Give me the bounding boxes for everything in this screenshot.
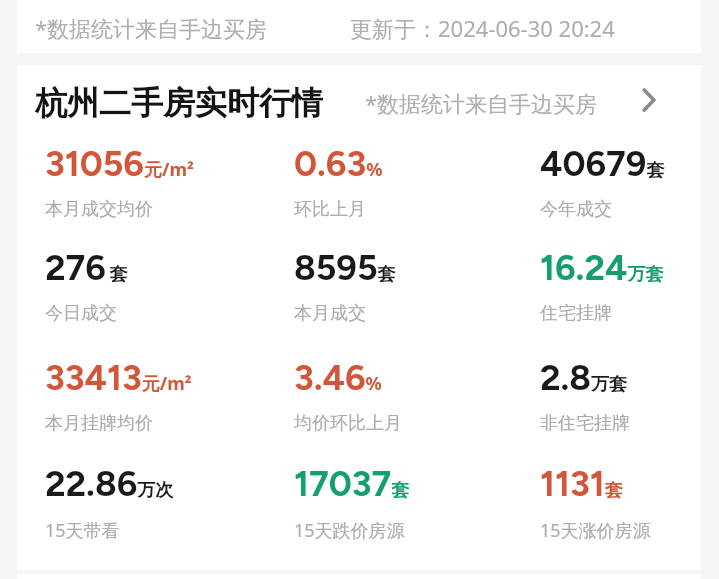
staticText: 33413元/m²	[45, 356, 192, 399]
staticText: *数据统计来自手边买房	[365, 88, 598, 118]
staticText: 16.24万套	[540, 246, 664, 289]
staticText: 22.86万次	[45, 462, 174, 505]
staticText: 本月成交均价	[45, 198, 153, 221]
staticText: 15天涨价房源	[540, 518, 651, 543]
staticText: 17037套	[294, 462, 410, 505]
staticText: 40679套	[540, 142, 665, 185]
staticText: 15天跌价房源	[294, 518, 405, 543]
other: 查看详情	[633, 84, 665, 116]
staticText: 本月成交	[294, 302, 366, 325]
staticText: 住宅挂牌	[540, 302, 612, 325]
staticText: 0.63%	[294, 142, 383, 185]
staticText: 环比上月	[294, 198, 366, 221]
staticText: 均价环比上月	[294, 412, 402, 435]
staticText: 1131套	[540, 462, 623, 505]
button[interactable]: 杭州二手房实时行情	[17, 79, 701, 127]
staticText: 15天带看	[45, 518, 120, 543]
staticText: 更新于：2024-06-30 20:24	[350, 13, 615, 43]
staticText: 3.46%	[294, 356, 382, 399]
staticText: 杭州二手房实时行情	[35, 83, 323, 123]
staticText: 本月挂牌均价	[45, 412, 153, 435]
staticText: 276 套	[45, 246, 128, 289]
staticText: 今年成交	[540, 198, 612, 221]
staticText: 今日成交	[45, 302, 117, 325]
staticText: *数据统计来自手边买房	[35, 13, 268, 43]
staticText: 2.8万套	[540, 356, 628, 399]
staticText: 8595套	[294, 246, 396, 289]
staticText: 非住宅挂牌	[540, 412, 630, 435]
staticText: 31056元/m²	[45, 142, 194, 185]
